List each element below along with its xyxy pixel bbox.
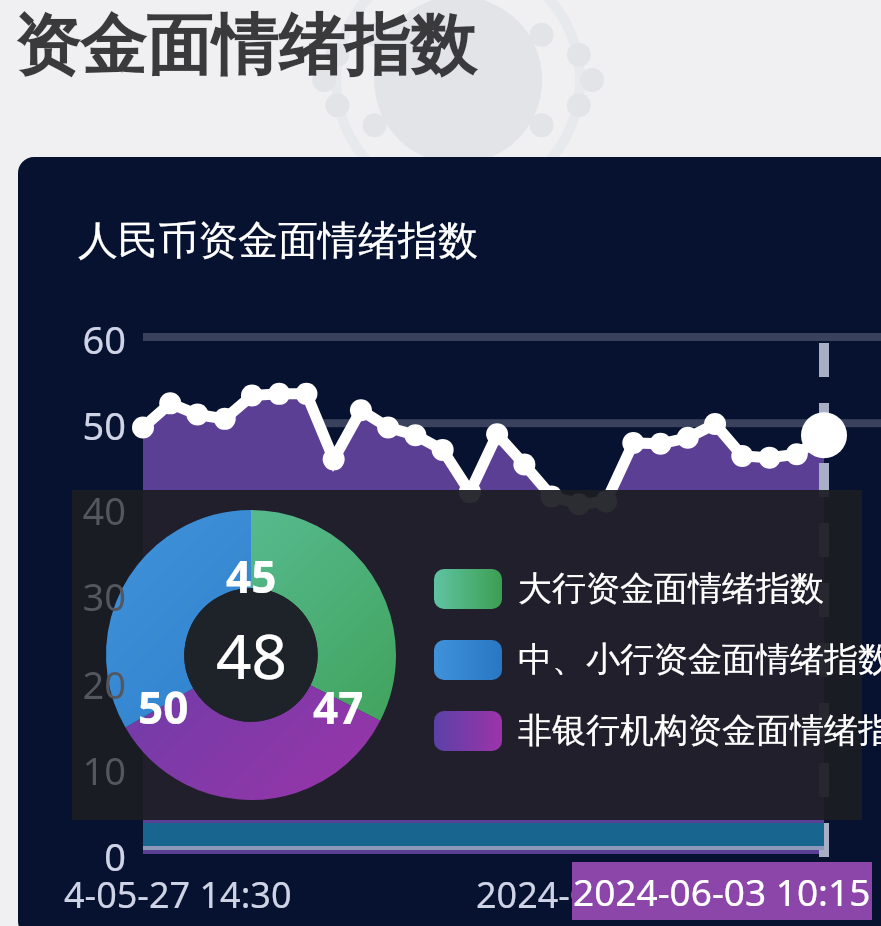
button[interactable]: 中、小行资金面情绪指数 [434,638,881,681]
staticText: 30 [82,570,126,622]
staticText: 资金面情绪指数 [14,4,476,87]
staticText: 50 [138,677,189,737]
staticText: 人民币资金面情绪指数 [78,215,478,265]
staticText: 47 [313,677,364,737]
staticText: 50 [82,399,126,451]
staticText: 2024-0 [476,870,591,919]
staticText: 4-05-27 14:30 [64,870,292,919]
staticText: 48 [216,613,287,697]
staticText: 0 [104,830,126,882]
staticText: 60 [82,313,126,365]
button[interactable]: 人民币资金面情绪指数 [18,157,881,926]
staticText: 20 [82,658,126,710]
staticText: 2024-06-03 10:15 [573,866,871,916]
button[interactable]: 非银行机构资金面情绪指数 [434,709,881,752]
button[interactable]: 2024-06-03 10:15 [572,862,872,920]
staticText: 40 [82,484,126,536]
staticText: 45 [226,546,277,606]
button[interactable]: 48 [106,510,396,800]
staticText: 10 [82,744,126,796]
button[interactable]: 大行资金面情绪指数 [434,567,824,610]
staticText: 中、小行资金面情绪指数 [518,638,881,681]
staticText: 非银行机构资金面情绪指数 [518,709,881,752]
staticText: 大行资金面情绪指数 [518,567,824,610]
